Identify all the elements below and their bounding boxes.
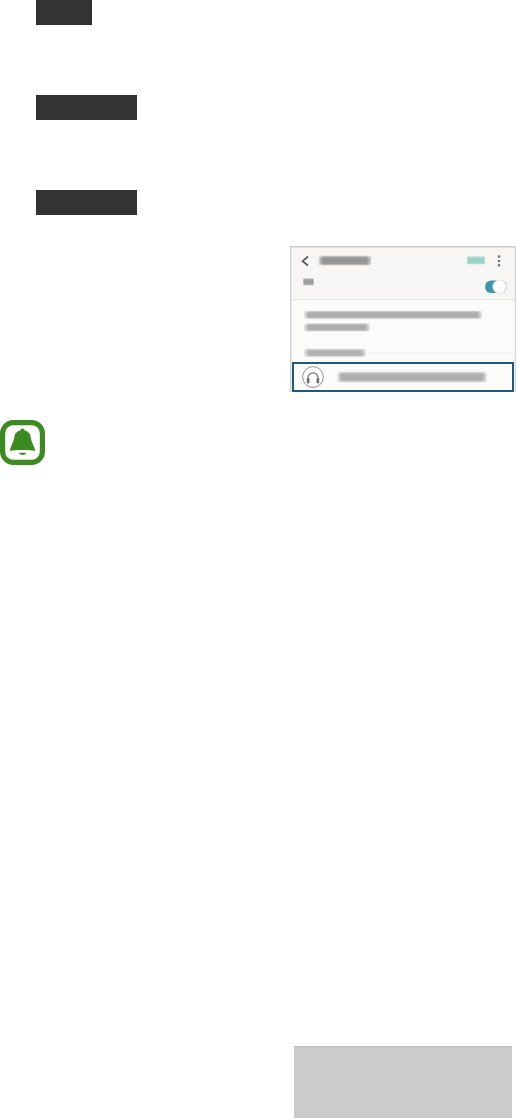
other: Notice [0,420,45,465]
button[interactable] [292,362,514,392]
button[interactable]: More options [490,249,508,271]
button[interactable]: Scan [461,250,489,270]
button[interactable]: Bluetooth on [481,276,511,297]
button[interactable]: Navigate up [295,250,317,272]
